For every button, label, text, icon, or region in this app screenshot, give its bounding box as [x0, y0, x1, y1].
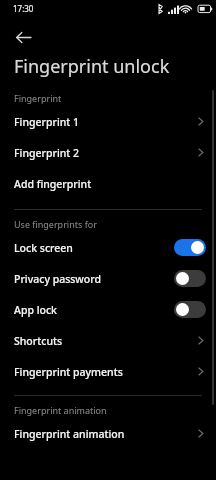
- staticText: Add fingerprint: [14, 177, 198, 191]
- staticText: Lock screen: [14, 241, 174, 255]
- button[interactable]: App lock: [0, 294, 216, 325]
- button[interactable]: Shortcuts: [0, 325, 216, 356]
- staticText: Fingerprint: [14, 92, 62, 104]
- staticText: 17:30: [13, 3, 34, 14]
- staticText: Fingerprint 2: [14, 146, 198, 160]
- button[interactable]: Privacy password: [0, 263, 216, 294]
- button[interactable]: Fingerprint animation: [0, 418, 216, 449]
- staticText: Fingerprint animation: [14, 404, 107, 416]
- button[interactable]: Fingerprint 1: [0, 106, 216, 137]
- staticText: Fingerprint unlock: [14, 54, 170, 79]
- staticText: Fingerprint animation: [14, 427, 198, 441]
- staticText: Fingerprint 1: [14, 115, 198, 129]
- button[interactable]: Add fingerprint: [0, 168, 216, 199]
- staticText: Privacy password: [14, 272, 174, 286]
- staticText: App lock: [14, 303, 174, 317]
- staticText: Shortcuts: [14, 334, 198, 348]
- button[interactable]: Fingerprint 2: [0, 137, 216, 168]
- button[interactable]: Back: [9, 23, 37, 51]
- staticText: Use fingerprints for: [14, 218, 97, 230]
- button[interactable]: Lock screen: [0, 232, 216, 263]
- staticText: Fingerprint payments: [14, 365, 198, 379]
- button[interactable]: Fingerprint payments: [0, 356, 216, 387]
